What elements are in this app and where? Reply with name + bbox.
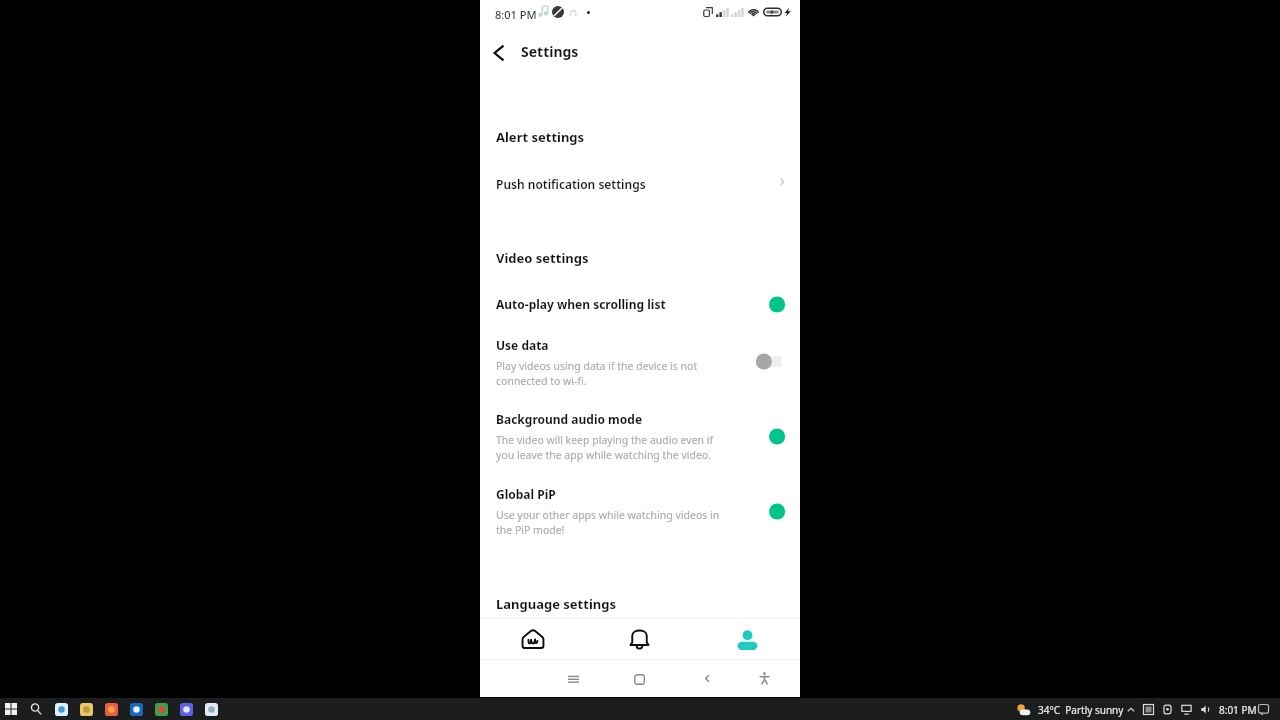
staticText: Alert settings — [496, 128, 585, 146]
staticText: 34°C Partly sunny — [1038, 703, 1124, 717]
button[interactable]: Toggle on — [755, 503, 789, 520]
staticText: Background audio mode — [496, 411, 643, 427]
staticText: Settings — [521, 42, 579, 61]
button[interactable]: Recent apps — [558, 664, 588, 694]
button[interactable]: Home — [624, 664, 654, 694]
button[interactable]: Home — [480, 617, 586, 659]
staticText: Language settings — [496, 595, 616, 613]
staticText: Play videos using data if the device is … — [496, 359, 698, 388]
button[interactable]: Profile — [693, 617, 800, 659]
button[interactable]: Toggle on — [755, 428, 789, 445]
staticText: Video settings — [496, 249, 589, 267]
button[interactable]: Accessibility — [749, 663, 779, 693]
button[interactable]: Background audio mode — [480, 402, 800, 466]
staticText: The video will keep playing the audio ev… — [496, 433, 714, 462]
button[interactable]: Notifications — [586, 617, 693, 659]
button[interactable]: Back — [486, 40, 512, 66]
staticText: Use data — [496, 337, 549, 353]
button[interactable]: Back — [692, 663, 722, 693]
staticText: Global PiP — [496, 486, 556, 502]
staticText: Use your other apps while watching video… — [496, 508, 720, 537]
staticText: 8:01 PM — [1219, 703, 1257, 717]
button[interactable]: Push notification settings — [480, 163, 800, 201]
button[interactable]: Toggle off — [755, 353, 789, 370]
staticText: Push notification settings — [496, 176, 646, 192]
button[interactable]: Auto-play when scrolling list — [480, 283, 800, 327]
button[interactable]: Use data — [480, 328, 800, 392]
staticText: Auto-play when scrolling list — [496, 296, 666, 312]
button[interactable]: Global PiP — [480, 477, 800, 541]
button[interactable]: Toggle on — [755, 296, 789, 313]
staticText: 8:01 PM — [495, 7, 537, 22]
